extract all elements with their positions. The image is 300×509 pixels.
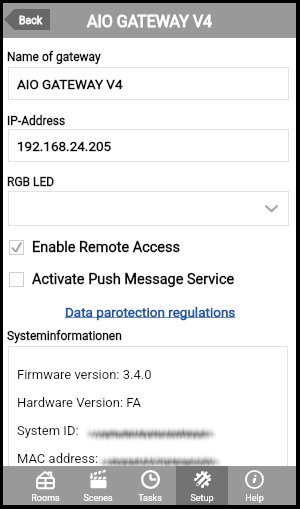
staticText: Activate Push Message Service (32, 271, 235, 288)
button[interactable]: AIO GATEWAY V4 (17, 67, 280, 100)
staticText: AIO GATEWAY V4 (87, 12, 213, 31)
button[interactable]: Scenes (72, 466, 124, 505)
button[interactable]: Back (4, 9, 50, 30)
button[interactable]: Data parotection regulations (65, 304, 236, 320)
staticText: Firmware version: 3.4.0 (17, 367, 152, 382)
button[interactable]: Tasks (124, 466, 176, 505)
staticText: Systeminformationen (7, 329, 122, 343)
staticText: System ID: (17, 423, 79, 438)
staticText: RGB LED (7, 175, 55, 189)
button[interactable]: Activate Push Message Service (9, 271, 300, 288)
button[interactable]: 192.168.24.205 (17, 129, 280, 162)
button[interactable]: Rooms (19, 466, 72, 505)
staticText: Enable Remote Access (32, 239, 181, 256)
staticText: Tasks (138, 493, 162, 504)
button[interactable]: Setup (176, 466, 228, 505)
button[interactable]: Enable Remote Access (9, 239, 300, 256)
staticText: Back (19, 14, 43, 26)
staticText: Setup (190, 493, 214, 504)
button[interactable]: Help (228, 466, 280, 505)
staticText: IP-Address (7, 114, 66, 128)
staticText: 192.168.24.205 (17, 138, 112, 154)
staticText: Name of gateway (7, 50, 101, 64)
staticText: AIO GATEWAY V4 (17, 76, 123, 92)
staticText: Help (245, 493, 264, 504)
button[interactable]: RGB LED selector (8, 191, 289, 226)
staticText: Scenes (83, 493, 113, 504)
staticText: Rooms (31, 493, 60, 504)
staticText: Hardware Version: FA (17, 395, 141, 410)
staticText: MAC address: (17, 451, 99, 466)
